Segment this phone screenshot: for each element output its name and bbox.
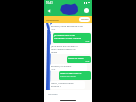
staticText: mon compte depuis ce xyxy=(51,48,76,51)
button[interactable]: Back xyxy=(45,7,52,14)
button[interactable]: Je ne peux pas acceder a xyxy=(50,44,90,54)
staticText: Message xyxy=(48,93,58,96)
button[interactable]: Verifier xyxy=(79,17,90,22)
staticText: Voici un lien pour le xyxy=(60,72,82,75)
staticText: 10:26 xyxy=(85,40,90,42)
staticText: 10:24 xyxy=(51,28,56,30)
staticText: matin xyxy=(51,51,58,53)
button[interactable]: Bonjour, un instant xyxy=(50,64,87,71)
button[interactable]: Voici un lien pour le xyxy=(59,71,91,80)
staticText: suivre en ligne xyxy=(60,75,76,78)
staticText: environ ? xyxy=(51,85,61,88)
staticText: Je ne peux pas acceder a xyxy=(51,45,78,48)
button[interactable]: Bonjour, votre demande a ete xyxy=(50,24,92,32)
staticText: Verifier xyxy=(81,18,89,21)
staticText: Merci, a quelle heure xyxy=(51,82,74,85)
button[interactable]: Message xyxy=(46,91,90,97)
staticText: Merci de votre xyxy=(68,57,84,60)
button[interactable]: Merci, a quelle heure xyxy=(50,81,85,89)
staticText: connecter a mon compte xyxy=(54,37,82,40)
staticText: 10:33 xyxy=(85,60,90,62)
button[interactable]: Contact profile xyxy=(84,8,89,13)
button[interactable]: Merci de votre xyxy=(67,56,91,63)
staticText: Verification xyxy=(46,18,60,21)
staticText: Bonjour, un instant xyxy=(51,65,72,68)
button[interactable]: Je n'arrive pas a me xyxy=(53,33,91,43)
staticText: Je n'arrive pas a me xyxy=(54,34,75,37)
staticText: Bonjour, votre demande a ete xyxy=(51,25,83,28)
staticText: 10:41 xyxy=(46,1,53,5)
staticText: 10:35 xyxy=(51,68,56,70)
staticText: MAR. 07 MAI xyxy=(62,32,74,35)
